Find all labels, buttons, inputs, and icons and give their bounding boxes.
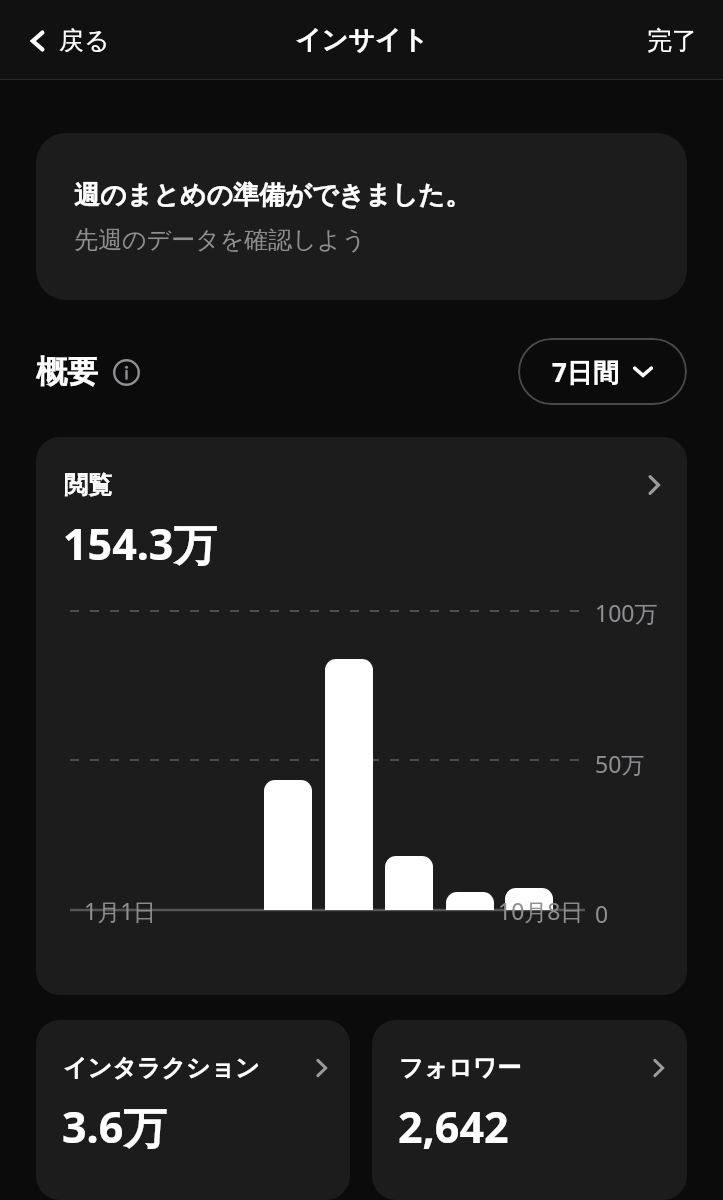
- staticText: 100万: [595, 597, 658, 628]
- button[interactable]: フォロワー: [372, 1020, 687, 1200]
- button[interactable]: 7日間: [518, 338, 687, 405]
- button[interactable]: 完了: [641, 19, 703, 62]
- staticText: 154.3万: [63, 514, 217, 573]
- button[interactable]: 週のまとめの準備ができました。: [36, 133, 687, 300]
- staticText: インタラクション: [63, 1053, 260, 1083]
- staticText: 戻る: [59, 25, 110, 56]
- staticText: 7日間: [552, 354, 619, 390]
- staticText: 閲覧: [64, 470, 112, 500]
- staticText: 10月8日: [498, 895, 584, 926]
- staticText: 週のまとめの準備ができました。: [74, 179, 471, 212]
- staticText: 0: [595, 898, 609, 929]
- staticText: 概要: [36, 352, 98, 391]
- staticText: インサイト: [295, 24, 429, 57]
- staticText: 1月1日: [84, 895, 157, 926]
- staticText: 完了: [647, 25, 697, 56]
- button[interactable]: インタラクション: [36, 1020, 350, 1200]
- staticText: 50万: [595, 748, 645, 779]
- staticText: 3.6万: [62, 1097, 167, 1156]
- staticText: 先週のデータを確認しよう: [74, 225, 366, 255]
- button[interactable]: 閲覧: [36, 437, 687, 995]
- button[interactable]: 情報: [109, 355, 143, 389]
- staticText: 2,642: [398, 1097, 509, 1156]
- staticText: フォロワー: [399, 1053, 522, 1083]
- button[interactable]: 戻る: [22, 19, 116, 62]
